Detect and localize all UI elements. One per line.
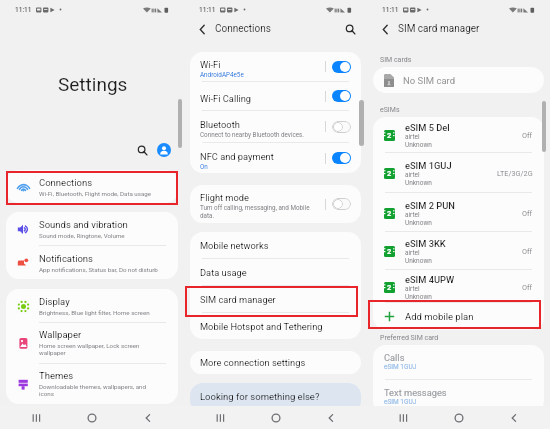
staticText: Unknown: [405, 257, 432, 265]
staticText: eSIM 5 Del: [405, 122, 450, 133]
staticText: 2: [387, 283, 392, 292]
staticText: eSIMs: [380, 106, 400, 114]
button[interactable]: Recent apps: [200, 406, 240, 429]
staticText: eSIM 1GUJ: [384, 398, 417, 406]
staticText: AndroidAP4e5e: [200, 71, 244, 78]
button[interactable]: SIM card manager: [190, 286, 361, 312]
button[interactable]: Flight mode: [190, 185, 361, 223]
button[interactable]: Connections: [6, 170, 178, 203]
staticText: airtel: [405, 133, 420, 141]
staticText: More connection settings: [200, 357, 306, 368]
button[interactable]: Looking for something else?: [190, 383, 361, 413]
button[interactable]: 2: [373, 153, 544, 192]
button[interactable]: Toggle: [332, 61, 351, 73]
staticText: eSIM 1GUJ: [384, 363, 417, 371]
staticText: Wi-Fi Calling: [200, 93, 252, 104]
staticText: airtel: [405, 211, 420, 219]
staticText: Wi-Fi, Bluetooth, Flight mode, Data usag…: [39, 190, 152, 197]
staticText: App notifications, Status bar, Do not di…: [39, 266, 158, 273]
staticText: Sounds and vibration: [39, 219, 128, 230]
button[interactable]: Home: [72, 406, 112, 429]
button[interactable]: Recent apps: [16, 406, 56, 429]
button[interactable]: 2: [373, 117, 544, 152]
button[interactable]: Back: [128, 406, 168, 429]
staticText: 11:11: [15, 6, 32, 14]
staticText: Turn off calling, messaging, and Mobile …: [200, 204, 310, 220]
button[interactable]: Home: [439, 406, 479, 429]
staticText: LTE/3G/2G: [497, 169, 533, 178]
staticText: Settings: [58, 73, 128, 95]
staticText: eSIM 2 PUN: [405, 200, 455, 211]
button[interactable]: Recent apps: [383, 406, 423, 429]
staticText: SIM cards: [380, 56, 412, 64]
staticText: Text messages: [384, 387, 447, 398]
staticText: Unknown: [405, 179, 432, 187]
button[interactable]: Wi-Fi: [190, 52, 361, 81]
button[interactable]: Navigate up: [195, 22, 209, 36]
staticText: NFC and payment: [200, 151, 274, 162]
button[interactable]: Toggle: [332, 90, 351, 102]
button[interactable]: Search: [343, 22, 357, 36]
button[interactable]: Bluetooth: [190, 111, 361, 142]
staticText: Brightness, Blue light filter, Home scre…: [39, 309, 150, 316]
staticText: On: [200, 163, 208, 170]
button[interactable]: Wallpaper: [6, 323, 178, 363]
button[interactable]: Display: [6, 289, 178, 322]
button[interactable]: Calls: [373, 345, 544, 379]
button[interactable]: Toggle: [332, 121, 351, 133]
button[interactable]: Add mobile plan: [373, 303, 544, 330]
staticText: Unknown: [405, 141, 432, 149]
staticText: airtel: [405, 249, 420, 257]
staticText: Off: [522, 247, 533, 256]
staticText: Off: [522, 209, 533, 218]
button[interactable]: Themes: [6, 364, 178, 404]
staticText: Connect to nearby Bluetooth devices.: [200, 131, 304, 138]
button[interactable]: 2: [373, 232, 544, 269]
staticText: Mobile networks: [200, 240, 269, 251]
staticText: Connections: [215, 23, 271, 35]
staticText: Themes: [39, 370, 74, 381]
button[interactable]: 2: [373, 193, 544, 231]
staticText: 11:11: [382, 6, 399, 14]
staticText: Data usage: [200, 267, 247, 278]
button[interactable]: Mobile Hotspot and Tethering: [190, 313, 361, 339]
button[interactable]: Text messages: [373, 380, 544, 414]
staticText: Downloadable themes, wallpapers, and ico…: [39, 383, 147, 398]
staticText: SIM card manager: [200, 294, 276, 305]
button[interactable]: No SIM card: [373, 67, 544, 93]
button[interactable]: NFC and payment: [190, 143, 361, 173]
button[interactable]: Back: [311, 406, 351, 429]
staticText: Wallpaper: [39, 329, 82, 340]
staticText: Add mobile plan: [405, 311, 474, 322]
button[interactable]: Notifications: [6, 246, 178, 279]
button[interactable]: More connection settings: [190, 351, 361, 374]
staticText: Display: [39, 296, 70, 307]
staticText: Off: [522, 283, 533, 292]
button[interactable]: Toggle: [332, 152, 351, 164]
button[interactable]: Wi-Fi Calling: [190, 82, 361, 110]
staticText: eSIM 4UPW: [405, 274, 455, 285]
staticText: Looking for something else?: [200, 391, 320, 402]
button[interactable]: Navigate up: [378, 22, 392, 36]
button[interactable]: Sounds and vibration: [6, 212, 178, 245]
button[interactable]: Mobile networks: [190, 232, 361, 258]
staticText: airtel: [405, 171, 420, 179]
staticText: 11:11: [199, 6, 216, 14]
button[interactable]: Back: [494, 406, 534, 429]
staticText: eSIM 1GUJ: [405, 160, 452, 171]
button[interactable]: Data usage: [190, 259, 361, 285]
staticText: Bluetooth: [200, 119, 240, 130]
button[interactable]: Search settings: [135, 143, 150, 158]
staticText: Notifications: [39, 253, 94, 264]
staticText: Mobile Hotspot and Tethering: [200, 321, 323, 332]
button[interactable]: 2: [373, 270, 544, 302]
button[interactable]: Home: [256, 406, 296, 429]
staticText: Unknown: [405, 293, 432, 301]
staticText: 2: [387, 209, 392, 218]
staticText: SIM card manager: [398, 23, 480, 35]
staticText: Calls: [384, 352, 405, 363]
button[interactable]: Account: [157, 143, 171, 157]
staticText: Sound mode, Ringtone, Volume: [39, 232, 125, 239]
button[interactable]: Toggle: [332, 198, 351, 210]
staticText: Unknown: [405, 219, 432, 227]
